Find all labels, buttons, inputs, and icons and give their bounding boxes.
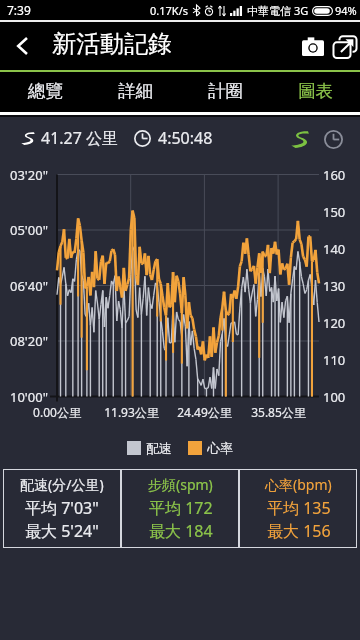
staticText: 120 [323,314,346,332]
staticText: 新活動記錄 [52,29,172,59]
button[interactable]: 心率(bpm) [239,469,357,548]
staticText: 心率 [207,440,233,456]
staticText: 最大 156 [267,520,331,542]
button[interactable]: 計圈 [180,72,270,112]
staticText: 11.93公里 [104,404,159,420]
staticText: 中華電信 [247,4,291,18]
staticText: 100 [323,388,346,406]
staticText: 平均 172 [149,497,213,519]
staticText: 4:50:48 [158,127,213,149]
staticText: 3G [294,3,309,18]
staticText: 24.49公里 [177,404,232,420]
staticText: 03'20" [10,166,48,184]
button[interactable]: 步頻(spm) [121,469,239,548]
button[interactable]: Back [0,22,46,70]
staticText: 心率(bpm) [265,475,332,494]
staticText: 平均 7'03" [25,497,99,519]
staticText: 配速 [146,440,172,456]
staticText: 0.00公里 [33,404,81,420]
staticText: 最大 184 [149,520,213,542]
staticText: 平均 135 [267,497,331,519]
staticText: 150 [323,203,346,221]
staticText: 05'00" [10,221,48,239]
button[interactable]: 配速(分/公里) [3,469,121,548]
button[interactable]: 圖表 [270,72,360,112]
staticText: 110 [323,351,346,369]
staticText: 圖表 [298,80,333,102]
staticText: 10'00" [10,388,48,406]
staticText: 0.17K/s [150,3,188,18]
button[interactable]: Share [330,22,360,70]
staticText: 160 [323,166,346,184]
staticText: 詳細 [118,80,153,102]
staticText: 35.85公里 [251,404,306,420]
button[interactable]: Split times [318,124,348,154]
staticText: 06'40" [10,277,48,295]
button[interactable]: Take photo [295,22,330,70]
staticText: 94% [335,3,357,18]
staticText: 最大 5'24" [25,520,99,542]
staticText: 140 [323,240,346,258]
button[interactable]: 詳細 [90,72,180,112]
staticText: 配速(分/公里) [20,475,104,494]
staticText: 130 [323,277,346,295]
staticText: 計圈 [208,80,243,102]
staticText: 08'20" [10,332,48,350]
button[interactable]: 總覽 [0,72,90,112]
staticText: 總覽 [28,80,63,102]
button[interactable]: Route map [284,124,314,154]
staticText: 41.27 公里 [41,127,119,149]
staticText: 步頻(spm) [148,475,213,494]
staticText: 7:39 [7,2,31,18]
